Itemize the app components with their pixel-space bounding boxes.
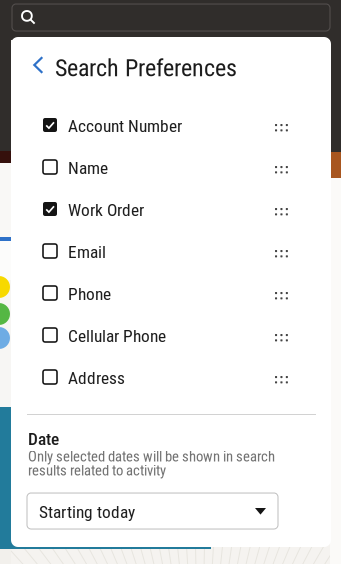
button[interactable]: Name <box>11 146 330 188</box>
button[interactable]: Search Preferences <box>11 53 261 97</box>
staticText: Cellular Phone <box>68 326 166 346</box>
button[interactable]: Email <box>11 230 330 272</box>
staticText: Name <box>68 158 108 178</box>
staticText: Only selected dates will be shown in sea… <box>28 448 275 465</box>
staticText: Phone <box>68 284 111 304</box>
staticText: Date <box>28 429 59 449</box>
staticText: Email <box>68 242 106 262</box>
button[interactable]: Address <box>11 356 330 398</box>
button[interactable]: Starting today <box>27 493 278 529</box>
button[interactable]: Account Number <box>11 104 330 146</box>
staticText: Search Preferences <box>55 54 237 82</box>
staticText: Account Number <box>68 116 182 136</box>
button[interactable]: Work Order <box>11 188 330 230</box>
button[interactable]: Phone <box>11 272 330 314</box>
button[interactable]: Cellular Phone <box>11 314 330 356</box>
staticText: Address <box>68 368 125 388</box>
staticText: Starting today <box>39 502 135 522</box>
staticText: results related to activity <box>28 462 166 479</box>
staticText: Work Order <box>68 200 144 220</box>
